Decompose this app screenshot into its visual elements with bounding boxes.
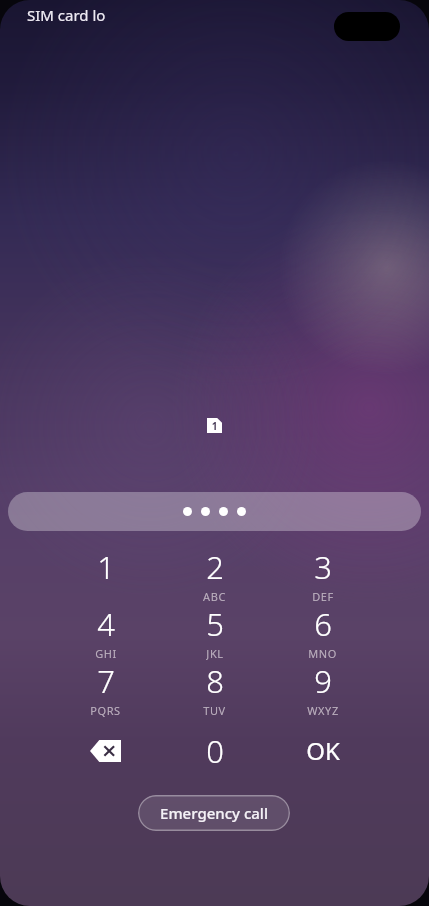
- staticText: 3: [314, 546, 332, 588]
- staticText: Emergency call: [160, 803, 268, 823]
- staticText: SIM card lo: [27, 5, 106, 25]
- staticText: 7: [97, 660, 115, 702]
- staticText: 1: [207, 419, 222, 433]
- staticText: MNO: [308, 646, 337, 660]
- staticText: 2: [206, 546, 224, 588]
- staticText: PQRS: [90, 703, 121, 717]
- staticText: WXYZ: [307, 703, 339, 717]
- button[interactable]: 3: [270, 546, 375, 603]
- staticText: OK: [306, 734, 340, 767]
- staticText: 5: [206, 603, 224, 645]
- staticText: 0: [206, 730, 224, 772]
- button[interactable]: 5: [162, 603, 267, 660]
- button[interactable]: 2: [162, 546, 267, 603]
- button[interactable]: Emergency call: [138, 795, 290, 831]
- button[interactable]: OK: [270, 722, 375, 779]
- staticText: TUV: [203, 703, 226, 717]
- staticText: ABC: [203, 589, 226, 603]
- staticText: 6: [314, 603, 332, 645]
- button[interactable]: 0: [162, 722, 267, 779]
- staticText: JKL: [206, 646, 224, 660]
- staticText: 8: [206, 660, 224, 702]
- button[interactable]: 8: [162, 660, 267, 717]
- button[interactable]: 7: [53, 660, 158, 717]
- button[interactable]: 4: [53, 603, 158, 660]
- button[interactable]: [8, 492, 421, 531]
- staticText: GHI: [95, 646, 117, 660]
- button[interactable]: 1: [53, 546, 158, 603]
- button[interactable]: 6: [270, 603, 375, 660]
- button[interactable]: 9: [270, 660, 375, 717]
- staticText: 9: [314, 660, 332, 702]
- staticText: DEF: [312, 589, 334, 603]
- staticText: 1: [97, 546, 115, 588]
- button[interactable]: Backspace: [53, 722, 158, 779]
- staticText: 4: [97, 603, 115, 645]
